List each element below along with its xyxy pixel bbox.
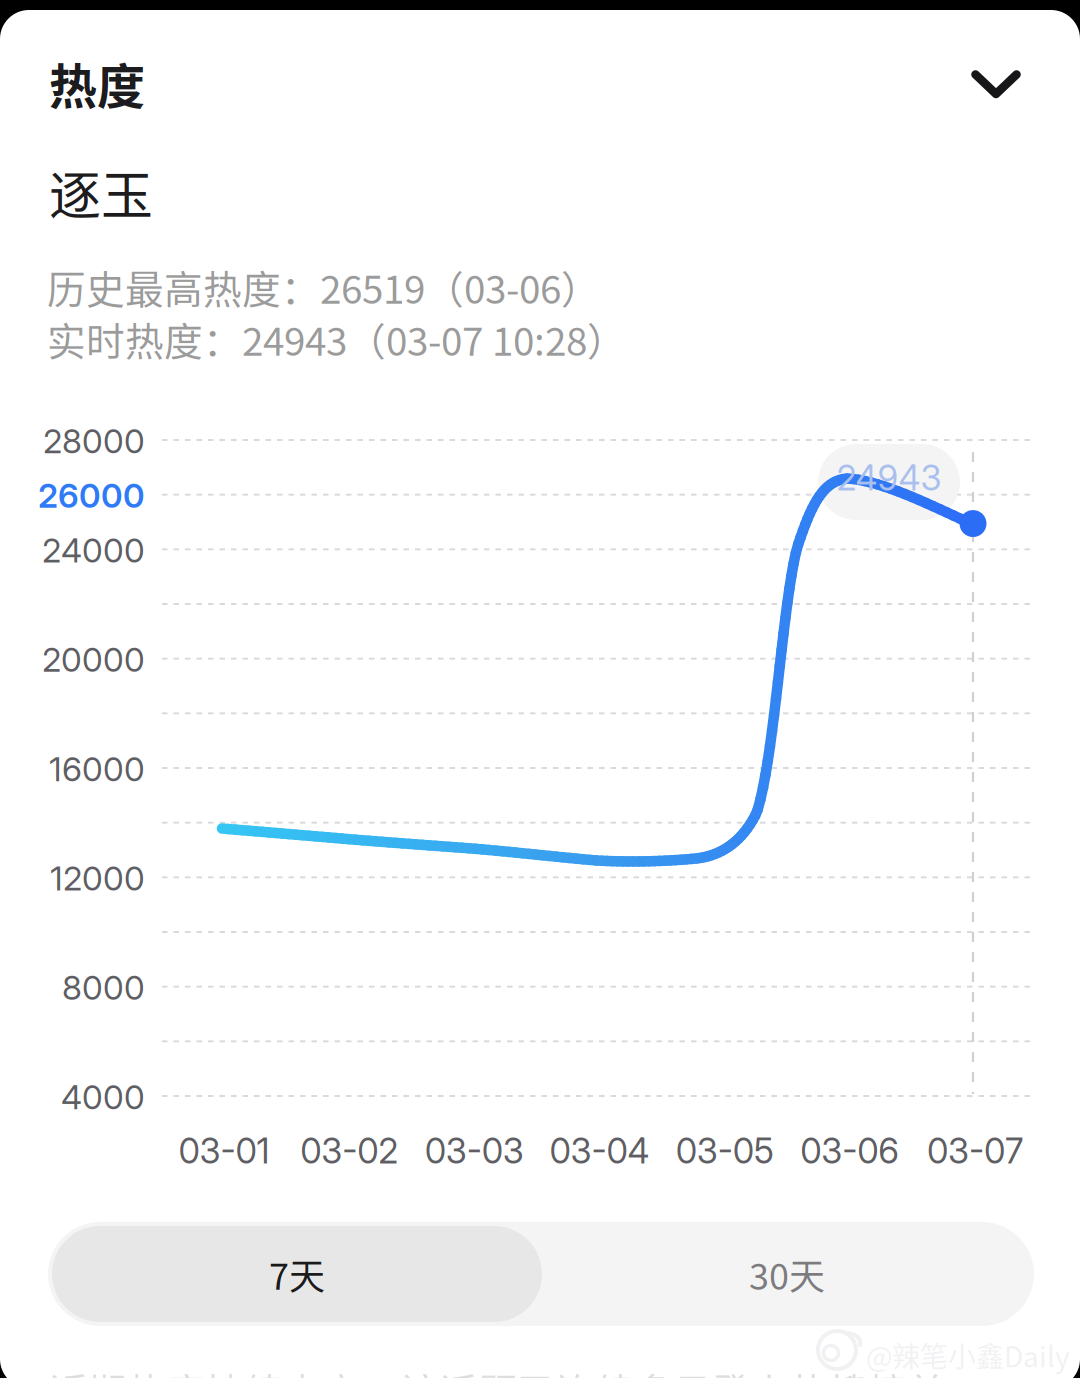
staticText: 近期热度持续走高，该话题已连续多日登上热搜榜单。 (49, 1362, 985, 1378)
staticText: 12000 (50, 858, 145, 898)
staticText: 28000 (43, 421, 145, 461)
staticText: 03-03 (425, 1130, 524, 1172)
staticText: 03-05 (676, 1130, 774, 1172)
staticText: 30天 (749, 1248, 825, 1300)
staticText: 逐玉 (49, 154, 153, 230)
staticText: 03-07 (927, 1130, 1023, 1172)
staticText: 历史最高热度：26519（03-06） (47, 259, 600, 315)
staticText: 03-01 (178, 1130, 269, 1172)
staticText: @辣笔小鑫Daily (866, 1335, 1070, 1375)
staticText: 24000 (42, 530, 145, 570)
staticText: 24943 (836, 457, 941, 499)
button[interactable]: Collapse (941, 38, 1051, 130)
staticText: 4000 (61, 1077, 145, 1117)
staticText: 实时热度：24943（03-07 10:28） (47, 311, 626, 367)
staticText: 7天 (269, 1248, 325, 1300)
button[interactable]: 30天 (542, 1226, 1032, 1322)
staticText: 26000 (38, 475, 145, 516)
button[interactable]: 7天 (52, 1226, 542, 1322)
staticText: 03-02 (300, 1130, 398, 1172)
staticText: 8000 (62, 967, 145, 1008)
staticText: 20000 (42, 639, 145, 680)
staticText: 热度 (49, 48, 145, 118)
staticText: 03-06 (800, 1130, 899, 1172)
staticText: 16000 (49, 749, 145, 789)
staticText: 03-04 (549, 1130, 649, 1172)
